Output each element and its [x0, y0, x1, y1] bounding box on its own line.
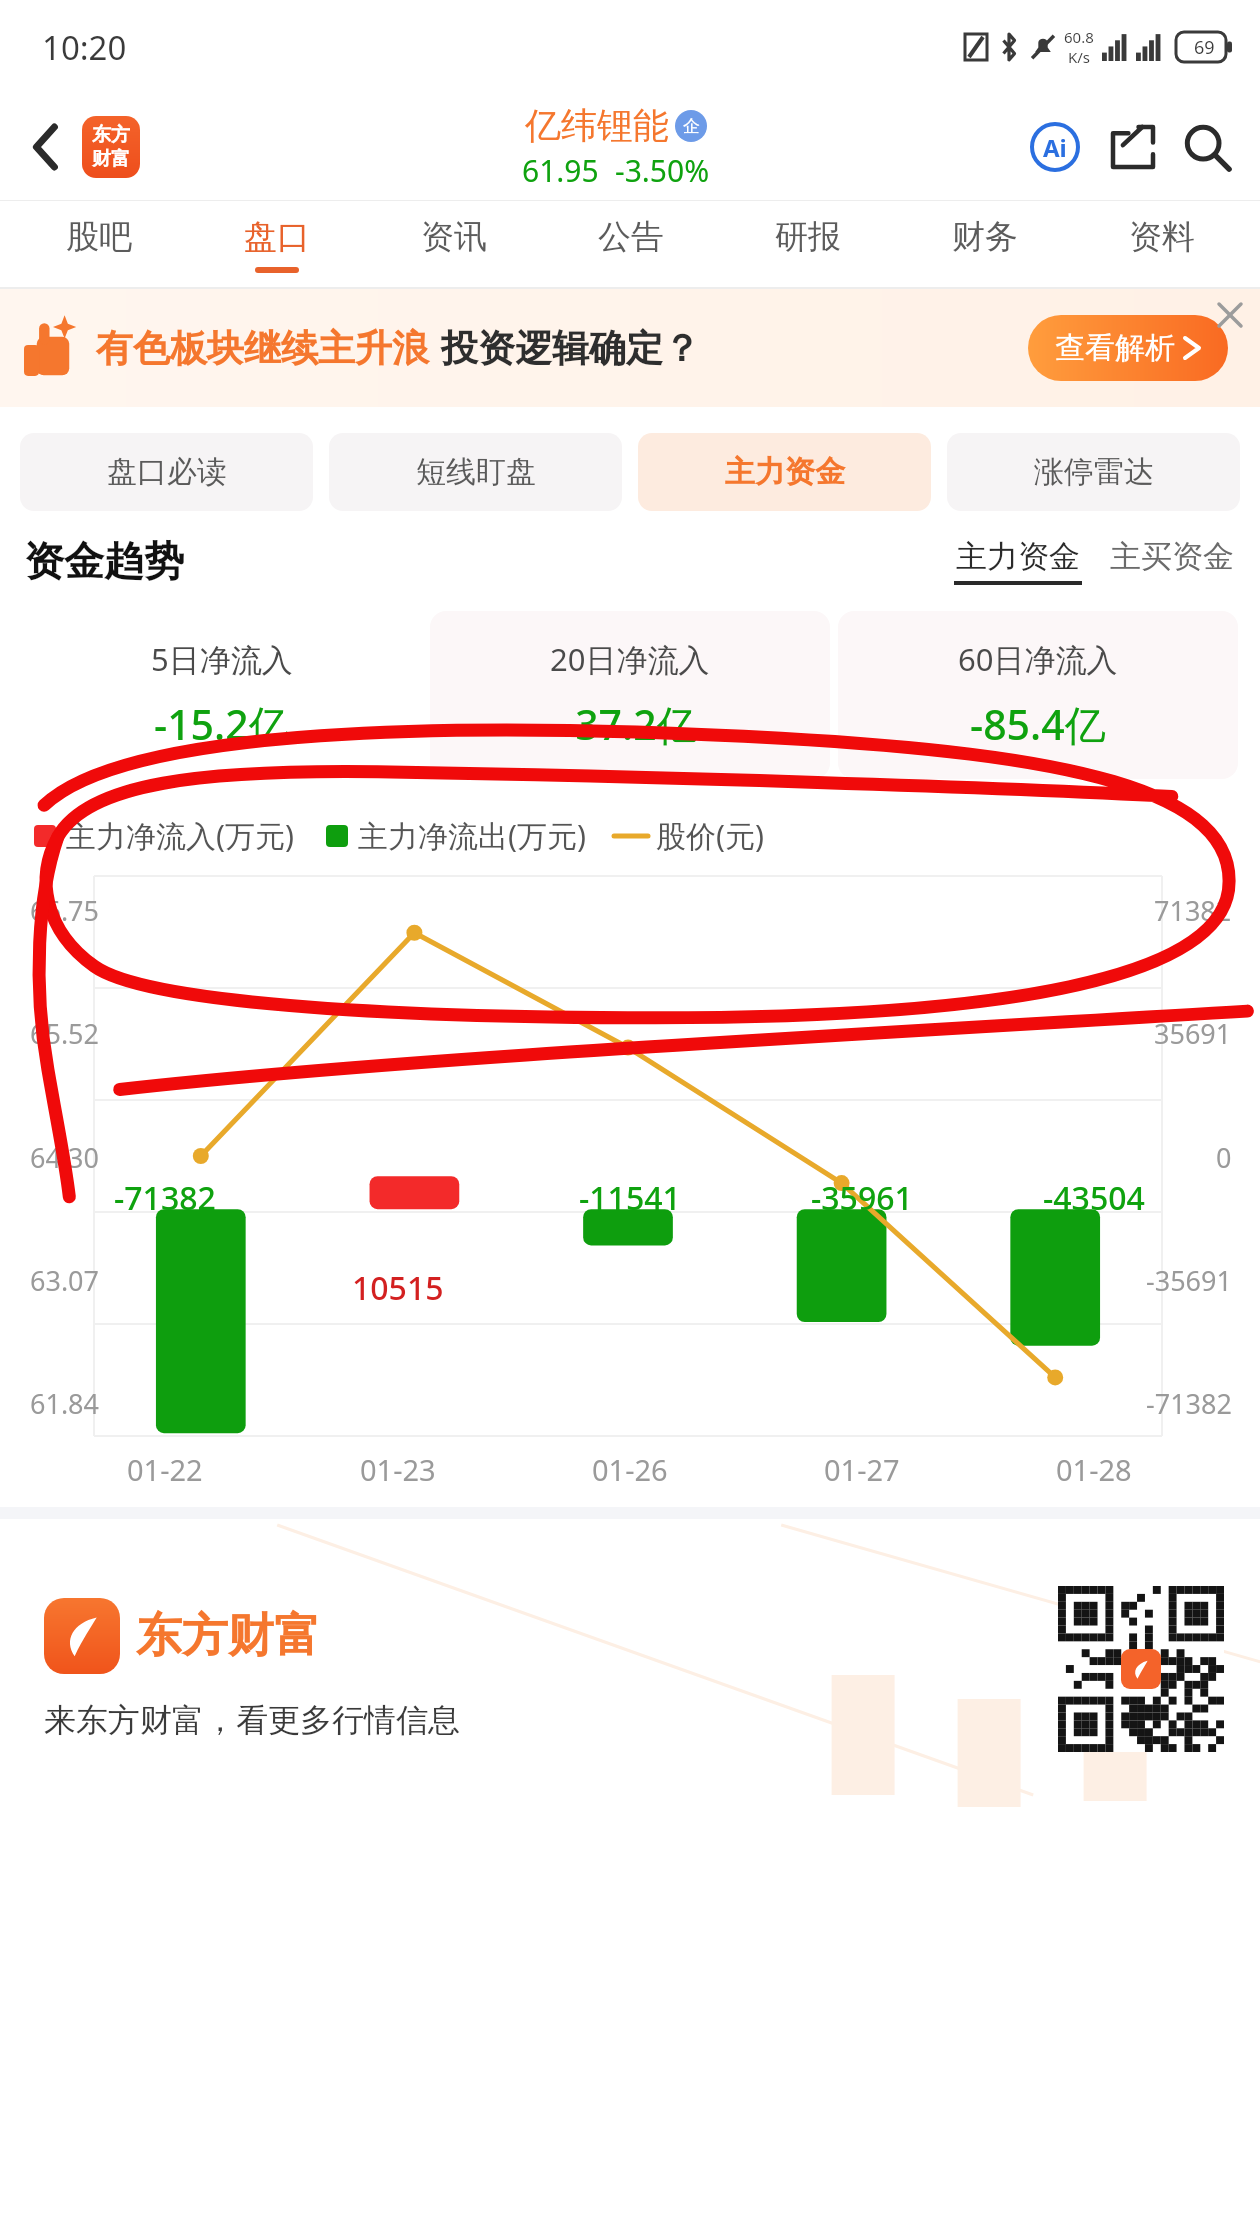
button[interactable]: 5日净流入 [22, 611, 422, 779]
staticText: 资金趋势 [24, 536, 184, 586]
staticText: -43504 [1043, 1176, 1145, 1220]
staticText: -35691 [1146, 1262, 1232, 1299]
button[interactable]: 短线盯盘 [329, 433, 622, 511]
staticText: -71382 [114, 1176, 216, 1220]
staticText: 资讯 [421, 216, 487, 258]
staticText: 61.84 [30, 1385, 100, 1422]
button[interactable]: Close [1208, 293, 1252, 337]
staticText: -71382 [1146, 1385, 1232, 1422]
staticText: 主买资金 [1110, 537, 1234, 576]
staticText: 东方财富 [136, 1607, 320, 1665]
staticText: 20日净流入 [550, 638, 710, 680]
staticText: 主力资金 [725, 453, 845, 491]
staticText: -35961 [811, 1176, 913, 1220]
staticText: 10515 [352, 1266, 444, 1310]
staticText: 亿纬锂能 [525, 103, 669, 148]
staticText: 01-28 [1056, 1450, 1132, 1489]
staticText: 公告 [598, 216, 664, 258]
staticText: 短线盯盘 [416, 453, 536, 491]
staticText: 5日净流入 [151, 638, 293, 680]
staticText: 盘口 [244, 216, 310, 258]
staticText: -11541 [579, 1176, 681, 1220]
staticText: 61.95 [522, 150, 599, 191]
staticText: 研报 [775, 216, 841, 258]
staticText: 01-27 [824, 1450, 900, 1489]
staticText: 35691 [1154, 1015, 1232, 1052]
staticText: -15.2亿 [154, 696, 290, 752]
staticText: 查看解析 [1055, 329, 1175, 367]
button[interactable]: 股吧 [10, 201, 188, 287]
staticText: 01-22 [127, 1450, 203, 1489]
button[interactable]: 主力资金 [954, 537, 1082, 585]
staticText: 资料 [1129, 216, 1195, 258]
button[interactable]: 财务 [896, 201, 1073, 287]
staticText: 财富 [92, 147, 130, 171]
staticText: 主力资金 [956, 537, 1080, 576]
staticText: 财务 [952, 216, 1018, 258]
staticText: 主力净流入(万元) [66, 815, 294, 856]
staticText: 64.30 [30, 1139, 100, 1176]
button[interactable]: 东方 [82, 116, 140, 178]
staticText: 60.8 [1064, 27, 1094, 47]
button[interactable]: 60日净流入 [838, 611, 1238, 779]
button[interactable]: 资讯 [365, 201, 542, 287]
staticText: 65.52 [30, 1015, 100, 1052]
staticText: 涨停雷达 [1034, 453, 1154, 491]
staticText: -3.50% [615, 150, 710, 191]
staticText: -37.2亿 [562, 696, 698, 752]
staticText: 69 [1194, 35, 1215, 60]
staticText: 60日净流入 [958, 638, 1118, 680]
staticText: 盘口必读 [107, 453, 227, 491]
button[interactable]: AI [1024, 116, 1086, 178]
staticText: 0 [1216, 1139, 1232, 1176]
button[interactable]: 查看解析 [1028, 315, 1228, 381]
button[interactable]: 20日净流入 [430, 611, 830, 779]
button[interactable]: Share [1102, 116, 1164, 178]
button[interactable]: 主买资金 [1108, 537, 1236, 585]
staticText: 63.07 [30, 1262, 100, 1299]
button[interactable]: 资料 [1073, 201, 1250, 287]
staticText: K/s [1068, 47, 1091, 67]
staticText: 有色板块继续主升浪 [96, 325, 429, 372]
staticText: 企 [683, 116, 700, 137]
staticText: 10:20 [42, 25, 127, 70]
staticText: 东方 [92, 123, 130, 147]
staticText: 01-26 [592, 1450, 668, 1489]
staticText: 01-23 [360, 1450, 436, 1489]
button[interactable]: 研报 [719, 201, 896, 287]
staticText: 71382 [1154, 892, 1232, 929]
staticText: 投资逻辑确定？ [441, 325, 700, 372]
staticText: Ai [1043, 131, 1067, 164]
button[interactable]: 盘口必读 [20, 433, 313, 511]
button[interactable]: 盘口 [188, 201, 365, 287]
staticText: 股吧 [66, 216, 132, 258]
button[interactable]: 主力资金 [638, 433, 931, 511]
button[interactable]: 公告 [542, 201, 719, 287]
staticText: 66.75 [30, 892, 100, 929]
button[interactable]: 涨停雷达 [947, 433, 1240, 511]
staticText: 股价(元) [656, 815, 764, 856]
staticText: 主力净流出(万元) [358, 815, 586, 856]
button[interactable]: Back [20, 112, 72, 182]
staticText: -85.4亿 [970, 696, 1106, 752]
staticText: 来东方财富，看更多行情信息 [44, 1700, 460, 1740]
button[interactable]: Search [1176, 116, 1238, 178]
